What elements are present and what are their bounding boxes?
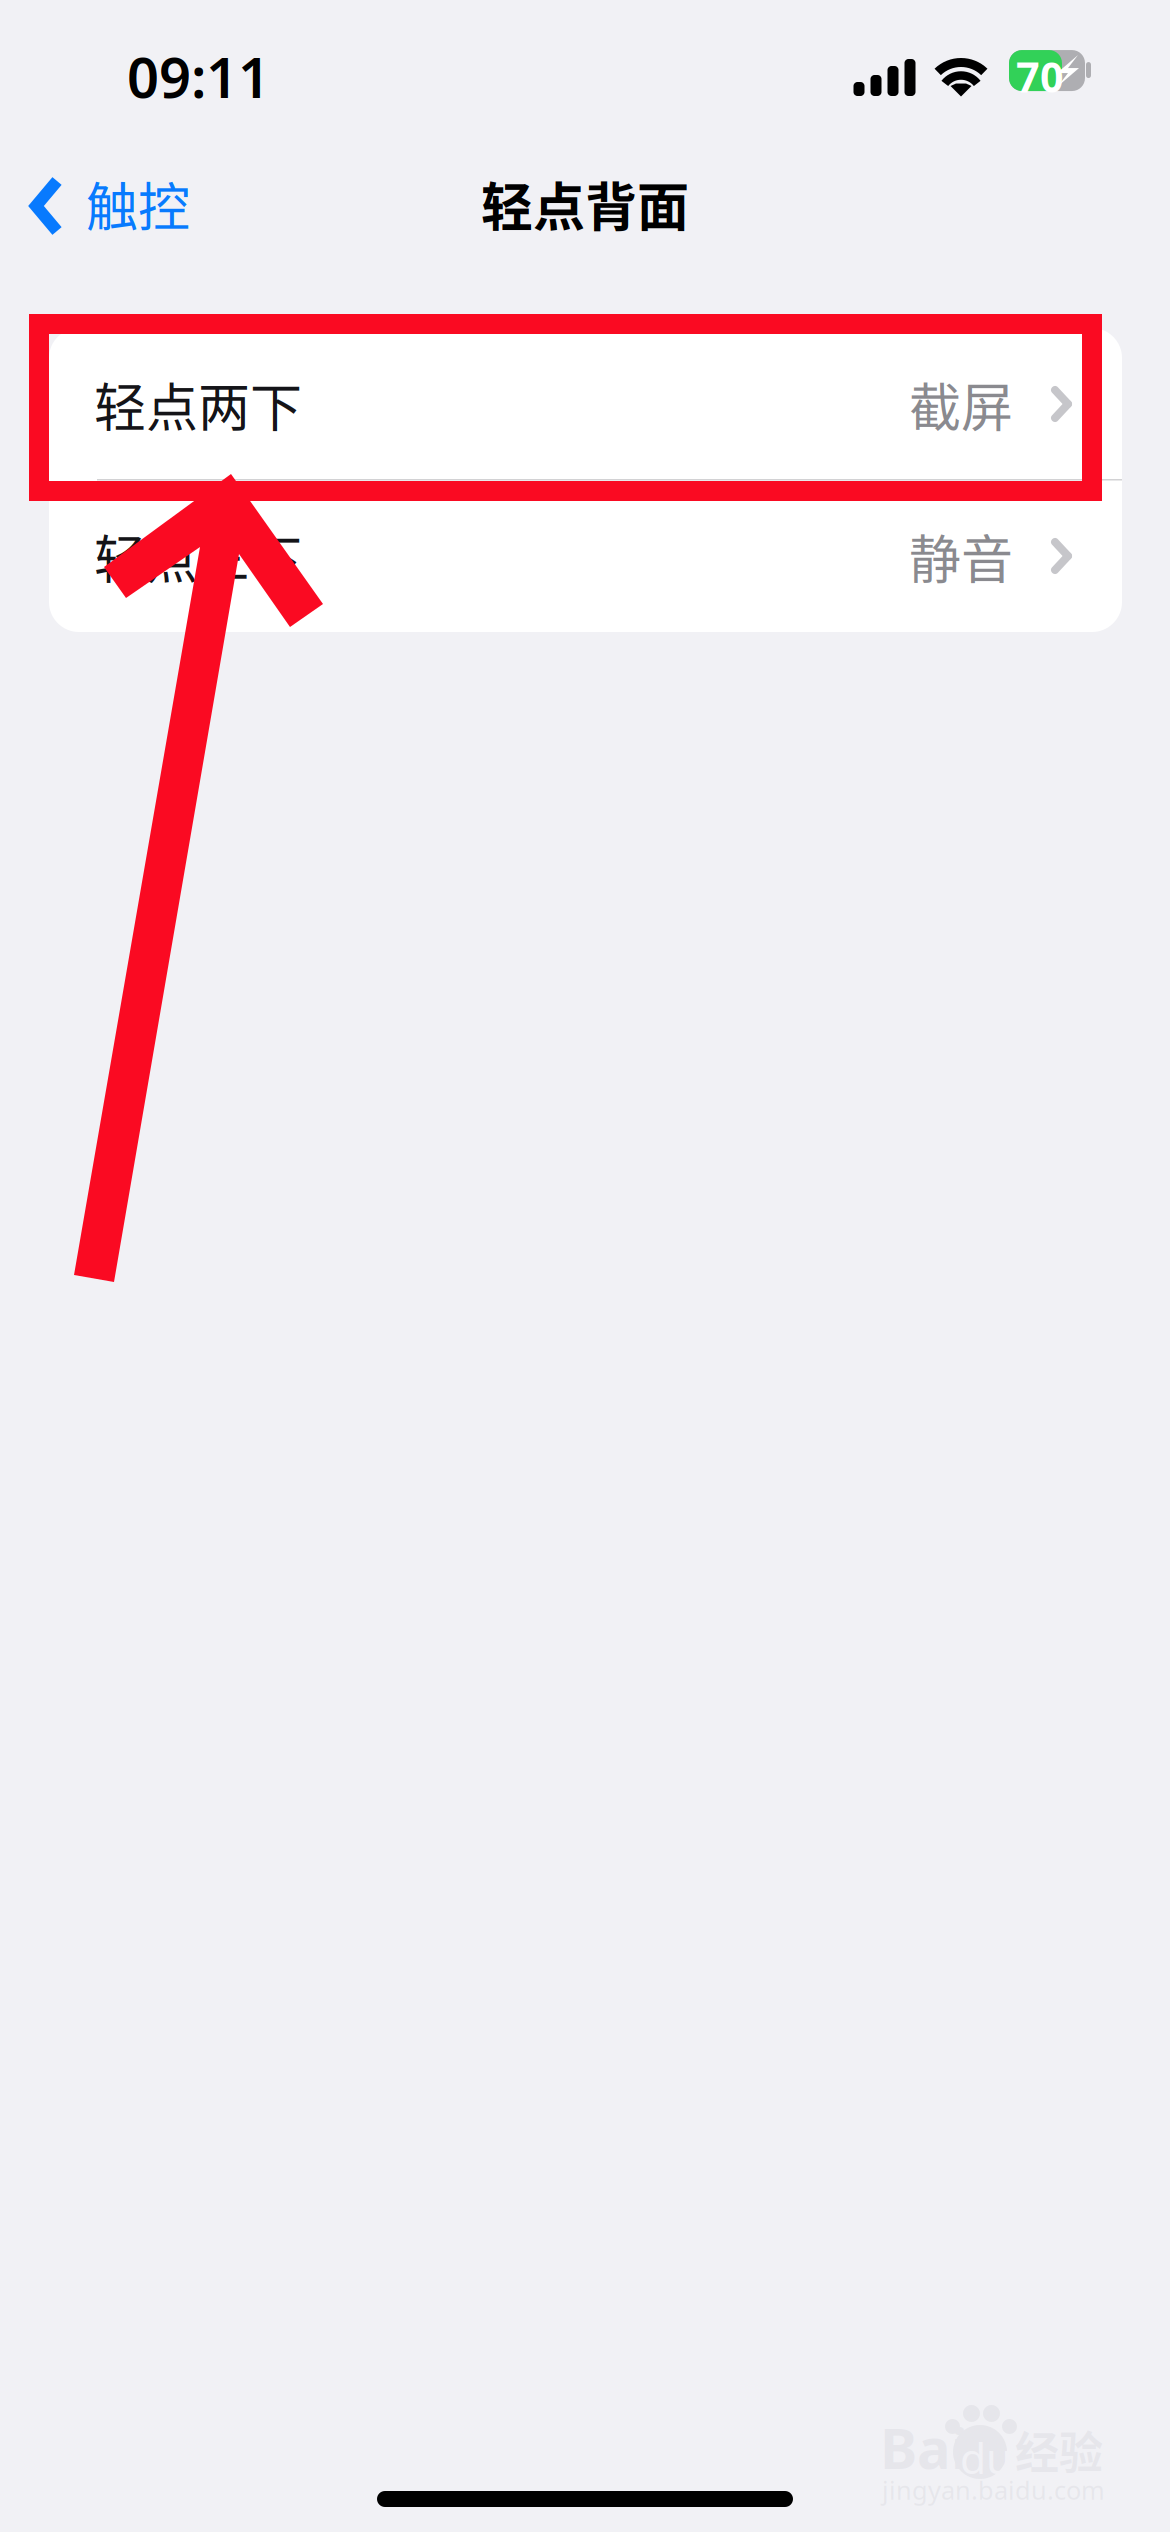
staticText: Bai xyxy=(880,2410,968,2484)
staticText: 09:11 xyxy=(127,39,270,113)
staticText: 经验 xyxy=(1015,2418,1103,2482)
button[interactable]: 轻点两下 xyxy=(49,328,1122,480)
button[interactable]: 触控 xyxy=(0,151,221,261)
staticText: jingyan.baidu.com xyxy=(882,2473,1105,2507)
staticText: 轻点三下 xyxy=(94,518,302,594)
staticText: 70 xyxy=(1016,49,1064,104)
staticText: 截屏 xyxy=(909,366,1013,442)
button[interactable]: 轻点三下 xyxy=(49,480,1122,632)
staticText: 轻点背面 xyxy=(481,166,689,241)
staticText: 静音 xyxy=(909,518,1013,594)
staticText: 轻点两下 xyxy=(94,366,302,442)
staticText: 触控 xyxy=(86,166,190,241)
staticText: du xyxy=(960,2429,1012,2486)
